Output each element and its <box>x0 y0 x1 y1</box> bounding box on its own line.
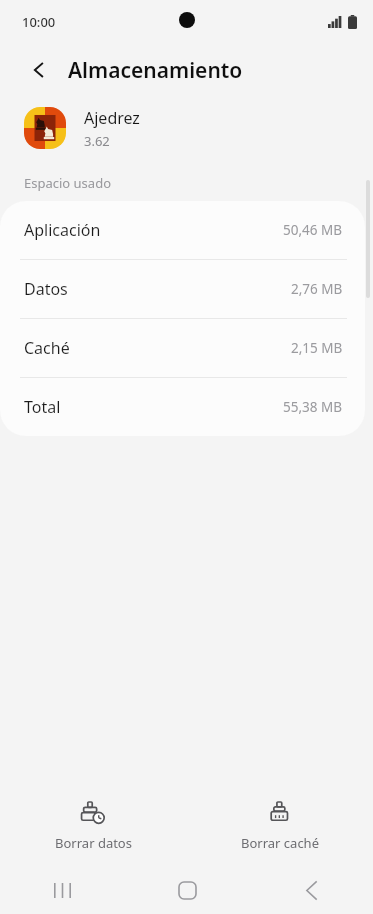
staticText: 3.62 <box>84 132 110 150</box>
button[interactable]: Caché <box>0 319 365 378</box>
button[interactable]: Borrar caché <box>186 792 373 852</box>
staticText: 50,46 MB <box>283 221 343 239</box>
staticText: Caché <box>24 337 70 359</box>
button[interactable]: Total <box>0 378 365 436</box>
button[interactable]: Borrar datos <box>0 792 186 852</box>
staticText: Borrar datos <box>55 834 132 852</box>
staticText: Aplicación <box>24 219 101 241</box>
button[interactable]: Home <box>125 866 249 914</box>
button[interactable]: Datos <box>0 260 365 319</box>
staticText: 55,38 MB <box>283 398 343 416</box>
button[interactable]: Recents <box>0 866 125 914</box>
staticText: Ajedrez <box>84 107 140 129</box>
staticText: 10:00 <box>22 13 56 31</box>
button[interactable]: Aplicación <box>0 201 365 260</box>
staticText: Borrar caché <box>241 834 319 852</box>
button[interactable]: Back <box>249 866 373 914</box>
staticText: Espacio usado <box>24 174 111 192</box>
staticText: 2,15 MB <box>291 339 343 357</box>
staticText: Total <box>24 396 61 418</box>
staticText: Almacenamiento <box>68 56 243 85</box>
button[interactable]: Back <box>22 53 56 87</box>
staticText: Datos <box>24 278 68 300</box>
staticText: 2,76 MB <box>291 280 343 298</box>
